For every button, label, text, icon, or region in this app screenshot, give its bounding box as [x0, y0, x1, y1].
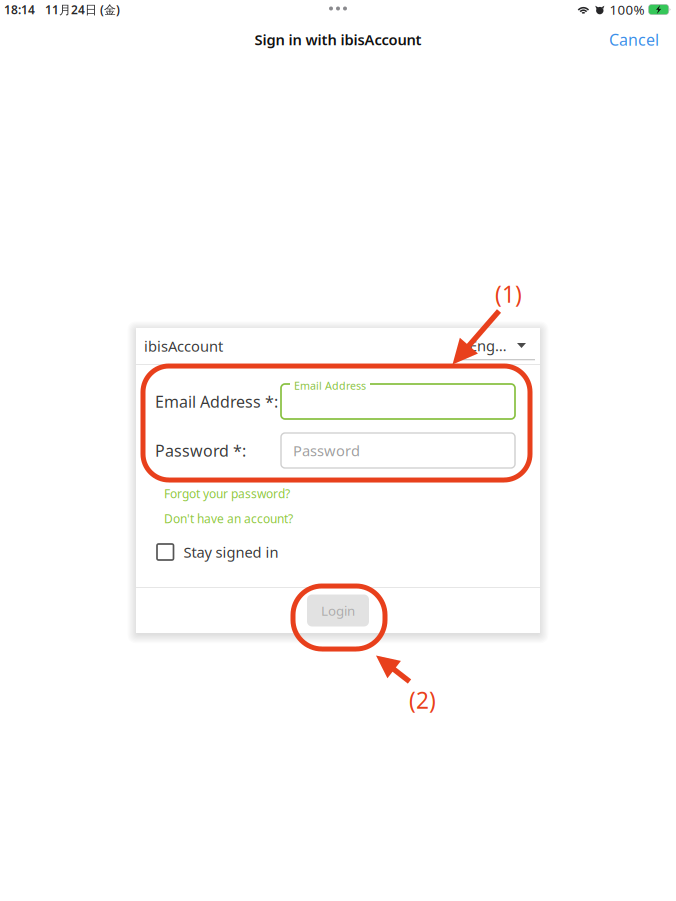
- button[interactable]: Forgot your password?: [157, 481, 519, 506]
- staticText: English: [469, 336, 509, 355]
- staticText: Don't have an account?: [164, 510, 293, 526]
- staticText: ibisAccount: [144, 336, 223, 356]
- staticText: Cancel: [609, 29, 659, 50]
- staticText: (1): [495, 279, 522, 309]
- button[interactable]: Don't have an account?: [157, 506, 519, 531]
- staticText: Email Address *:: [155, 391, 278, 412]
- staticText: Password *:: [155, 440, 246, 461]
- staticText: Login: [321, 602, 355, 619]
- button[interactable]: Stay signed in: [157, 531, 519, 573]
- staticText: Sign in with ibisAccount: [254, 30, 421, 49]
- button[interactable]: Cancel: [592, 20, 676, 59]
- staticText: Email Address: [294, 378, 366, 393]
- staticText: 100%: [610, 1, 645, 18]
- staticText: (2): [409, 685, 436, 715]
- staticText: Stay signed in: [183, 542, 278, 562]
- staticText: Forgot your password?: [164, 485, 290, 501]
- staticText: 18:14: [4, 1, 35, 17]
- button[interactable]: English: [461, 328, 535, 364]
- staticText: Password: [293, 441, 360, 460]
- staticText: 11月24日 (金): [45, 1, 120, 17]
- button[interactable]: Login: [307, 594, 369, 626]
